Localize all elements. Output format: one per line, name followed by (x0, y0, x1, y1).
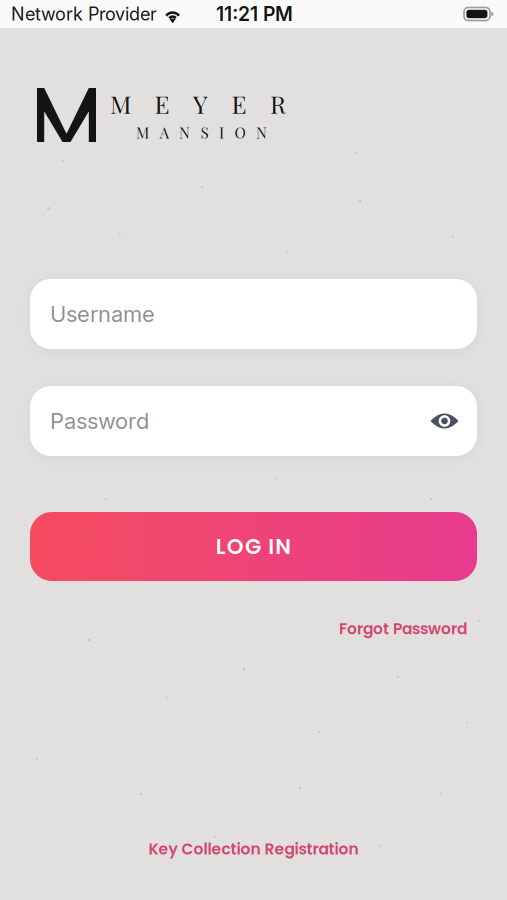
staticText: LOG IN (216, 532, 291, 561)
staticText: Password (50, 408, 149, 434)
staticText: Key Collection Registration (148, 838, 358, 860)
staticText: MANSION (136, 122, 267, 142)
button[interactable]: Key Collection Registration (132, 830, 374, 868)
staticText: Username (50, 301, 155, 327)
staticText: 11:21 PM (216, 2, 293, 26)
button[interactable]: Forgot Password (339, 611, 477, 647)
staticText: Network Provider (11, 3, 157, 25)
staticText: Forgot Password (339, 618, 467, 640)
button[interactable]: Password (30, 386, 477, 456)
button[interactable]: Username (30, 279, 477, 349)
staticText: MEYER (110, 87, 286, 120)
button[interactable]: LOG IN (30, 512, 477, 581)
